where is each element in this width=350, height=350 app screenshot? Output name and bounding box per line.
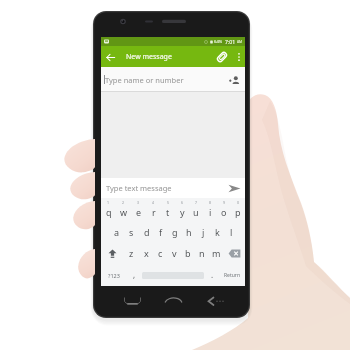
button[interactable]: f xyxy=(154,221,168,242)
staticText: h xyxy=(186,226,192,238)
staticText: s xyxy=(129,226,134,238)
staticText: c xyxy=(158,247,163,259)
staticText: , xyxy=(133,269,136,280)
staticText: m xyxy=(212,247,221,259)
button[interactable]: 4 xyxy=(146,198,161,221)
staticText: 0 xyxy=(237,200,240,205)
button[interactable]: 5 xyxy=(161,198,175,221)
button[interactable]: 3 xyxy=(131,198,146,221)
button[interactable]: s xyxy=(124,221,139,242)
staticText: z xyxy=(129,247,134,259)
staticText: w xyxy=(120,206,128,218)
staticText: p xyxy=(235,206,241,218)
button[interactable]: j xyxy=(196,221,210,242)
button[interactable]: d xyxy=(139,221,154,242)
staticText: ?123 xyxy=(108,272,120,279)
staticText: Return xyxy=(224,272,240,279)
button[interactable]: m xyxy=(209,242,223,264)
button[interactable]: 8 xyxy=(203,198,217,221)
staticText: Type text message xyxy=(106,183,172,193)
staticText: New message xyxy=(126,52,172,62)
button[interactable]: x xyxy=(139,242,153,264)
button[interactable]: More options xyxy=(232,50,245,63)
button[interactable]: 1 xyxy=(101,198,116,221)
button[interactable]: v xyxy=(167,242,181,264)
staticText: 9 xyxy=(223,200,226,205)
button[interactable]: Delete xyxy=(223,242,245,264)
staticText: 6 xyxy=(181,200,184,205)
staticText: u xyxy=(193,206,199,218)
staticText: i xyxy=(209,206,212,218)
button[interactable]: Navigate up xyxy=(101,48,119,66)
staticText: 4 xyxy=(152,200,155,205)
button[interactable]: 9 xyxy=(217,198,231,221)
staticText: t xyxy=(166,206,170,218)
button[interactable]: n xyxy=(195,242,209,264)
staticText: v xyxy=(172,247,177,259)
staticText: Type name or number xyxy=(105,75,184,85)
button[interactable]: 2 xyxy=(116,198,131,221)
button[interactable]: ?123 xyxy=(101,264,127,286)
button[interactable]: g xyxy=(168,221,182,242)
staticText: AM xyxy=(236,39,243,44)
button[interactable]: z xyxy=(124,242,139,264)
staticText: . xyxy=(211,269,214,280)
button[interactable]: , xyxy=(127,264,141,286)
button[interactable]: Return xyxy=(219,264,245,286)
staticText: j xyxy=(202,226,205,238)
staticText: f xyxy=(159,226,163,238)
button[interactable]: . xyxy=(205,264,219,286)
staticText: 5 xyxy=(167,200,170,205)
staticText: r xyxy=(152,206,156,218)
staticText: 7 xyxy=(195,200,198,205)
staticText: l xyxy=(230,226,233,238)
staticText: b xyxy=(185,247,191,259)
button[interactable]: a xyxy=(109,221,124,242)
button[interactable]: k xyxy=(210,221,224,242)
staticText: a xyxy=(114,226,120,238)
staticText: e xyxy=(136,206,142,218)
staticText: 8 xyxy=(209,200,212,205)
staticText: k xyxy=(215,226,220,238)
button[interactable]: Send xyxy=(223,178,245,198)
button[interactable]: c xyxy=(153,242,167,264)
button[interactable]: 0 xyxy=(231,198,245,221)
button[interactable]: h xyxy=(182,221,196,242)
staticText: 3 xyxy=(137,200,140,205)
staticText: o xyxy=(221,206,227,218)
staticText: x xyxy=(144,247,149,259)
staticText: n xyxy=(199,247,205,259)
button[interactable]: Shift xyxy=(101,242,124,264)
staticText: 2 xyxy=(122,200,125,205)
staticText: q xyxy=(106,206,112,218)
button[interactable]: 7 xyxy=(189,198,203,221)
button[interactable]: Attach xyxy=(212,47,232,67)
staticText: d xyxy=(144,226,150,238)
staticText: y xyxy=(180,206,185,218)
button[interactable]: l xyxy=(224,221,238,242)
button[interactable]: 6 xyxy=(175,198,189,221)
button[interactable]: Add recipient xyxy=(223,69,245,91)
staticText: g xyxy=(172,226,178,238)
staticText: 1 xyxy=(107,200,110,205)
staticText: 7:01 xyxy=(225,38,236,45)
staticText: 64% xyxy=(214,39,223,45)
button[interactable]: b xyxy=(181,242,195,264)
